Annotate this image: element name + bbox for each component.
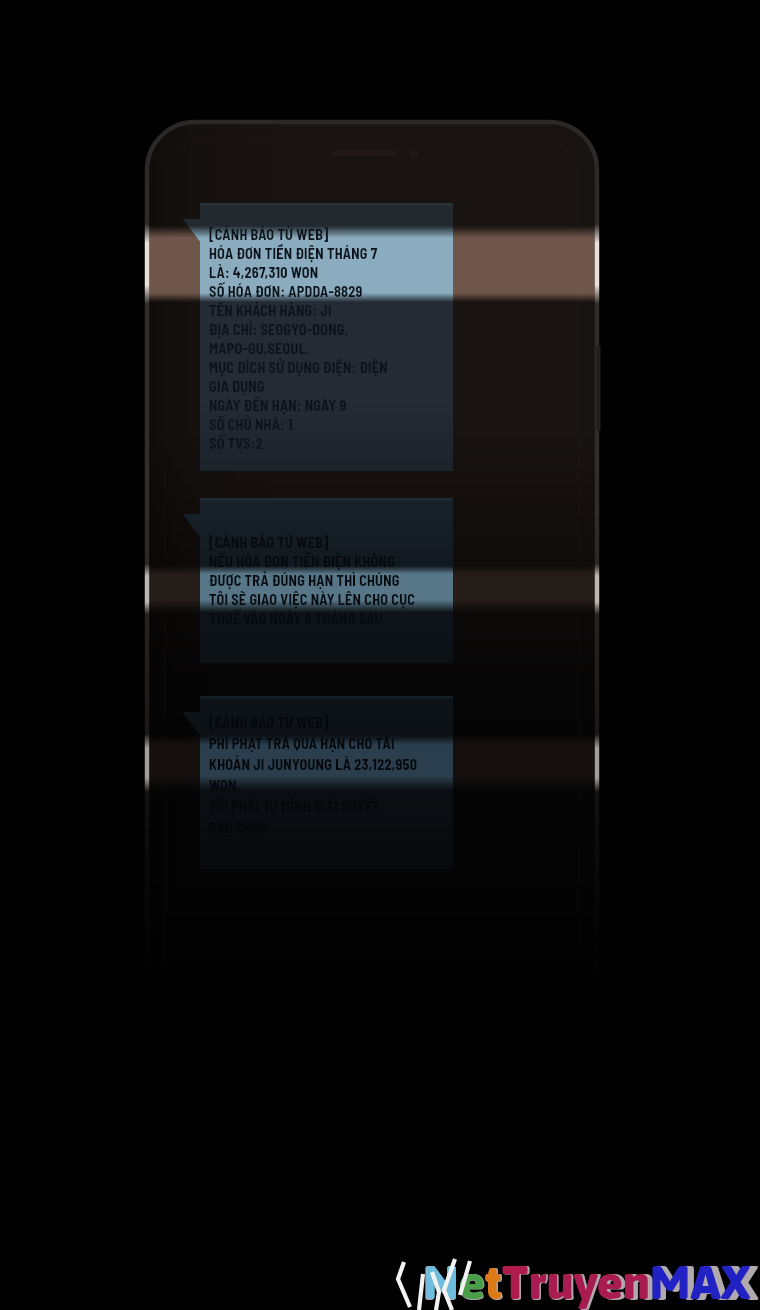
staticText: N bbox=[423, 1254, 459, 1310]
staticText: [CẢNH BÁO TỪ WEB] PHÍ PHẠT TRẢ QUÁ HẠN C… bbox=[209, 710, 418, 836]
staticText: T bbox=[502, 1255, 529, 1309]
staticText: A bbox=[697, 1254, 728, 1310]
staticText: e bbox=[597, 1255, 623, 1309]
staticText: y bbox=[576, 1254, 600, 1310]
staticText: N bbox=[424, 1255, 459, 1309]
staticText: X bbox=[728, 1254, 758, 1310]
staticText: X bbox=[721, 1255, 751, 1309]
staticText: M bbox=[655, 1254, 697, 1310]
staticText: u bbox=[548, 1254, 576, 1310]
staticText: t bbox=[486, 1254, 503, 1310]
staticText: t bbox=[485, 1255, 502, 1309]
button[interactable]: NetTruyenMAX bbox=[423, 1254, 758, 1310]
staticText: e bbox=[459, 1255, 485, 1309]
staticText: e bbox=[459, 1254, 486, 1310]
staticText: y bbox=[574, 1255, 597, 1309]
staticText: T bbox=[503, 1254, 530, 1310]
staticText: r bbox=[530, 1254, 548, 1310]
staticText: n bbox=[623, 1255, 650, 1309]
staticText: e bbox=[600, 1254, 627, 1310]
staticText: M bbox=[650, 1255, 691, 1309]
staticText: A bbox=[691, 1255, 721, 1309]
staticText: r bbox=[529, 1255, 547, 1309]
staticText: [CẢNH BÁO TỪ WEB] NẾU HÓA ĐƠN TIỀN ĐIỆN … bbox=[209, 532, 416, 627]
staticText: n bbox=[627, 1254, 655, 1310]
staticText: u bbox=[547, 1255, 574, 1309]
staticText: [CẢNH BÁO TỪ WEB] HÓA ĐƠN TIỀN ĐIỆN THÁN… bbox=[209, 224, 388, 452]
